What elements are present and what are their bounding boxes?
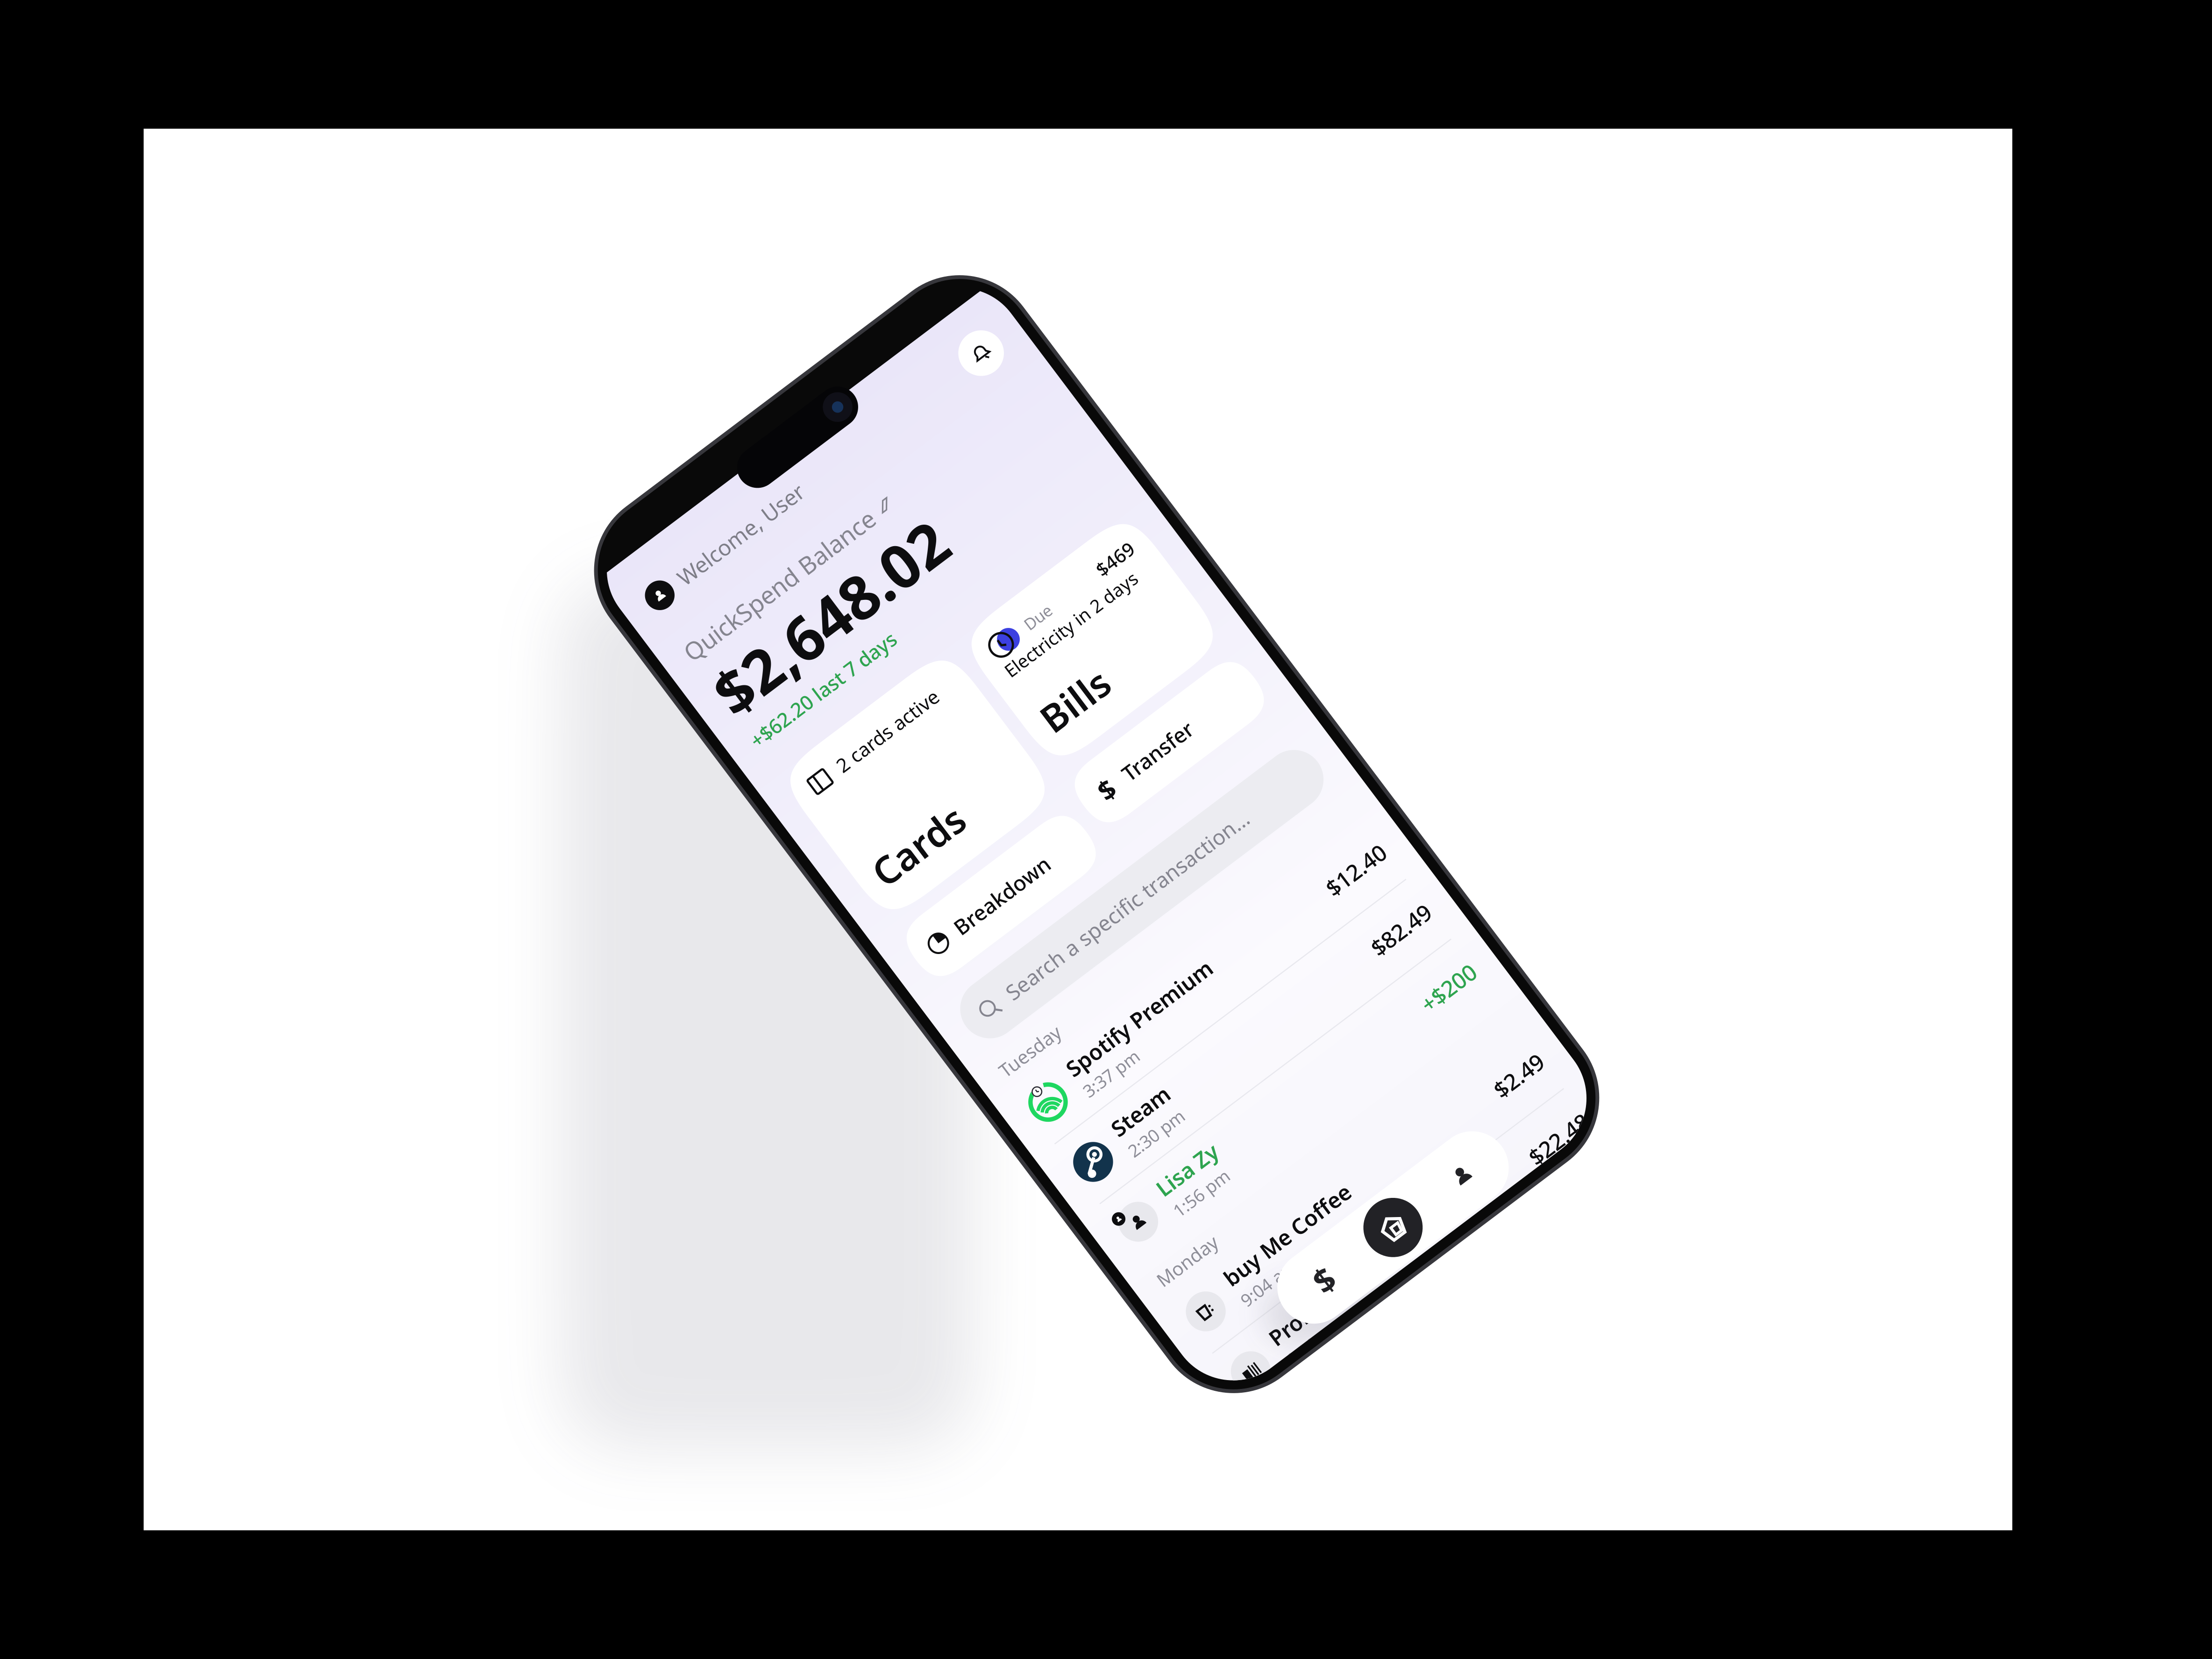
button[interactable]: Steam xyxy=(877,1057,1317,1131)
staticText: Lisa Zy xyxy=(931,1142,1003,1171)
staticText: buy Me Coffee xyxy=(931,1254,1084,1283)
button[interactable]: Spotify Premium xyxy=(877,982,1317,1056)
staticText: 6:56 pm xyxy=(931,1359,997,1383)
staticText: Breakdown xyxy=(927,812,1041,840)
staticText: Search a specific transaction… xyxy=(929,895,1228,923)
button[interactable]: Promenade Food xyxy=(877,1319,1317,1393)
staticText: Promenade Food xyxy=(931,1329,1112,1358)
staticText: 9:04 am xyxy=(931,1284,996,1308)
staticText: +$62.20 last 7 days xyxy=(877,541,1054,567)
staticText: Steam xyxy=(931,1067,999,1096)
staticText: Tuesday xyxy=(877,955,949,980)
staticText: 1:56 pm xyxy=(931,1172,997,1195)
staticText: 3:37 pm xyxy=(931,1022,997,1046)
staticText: QuickSpend Balance xyxy=(877,428,1109,461)
staticText: $2.49 xyxy=(1260,1266,1317,1296)
staticText: 2 cards active xyxy=(930,613,1053,639)
staticText: $2,648.02 xyxy=(877,461,1153,541)
button[interactable]: Home xyxy=(1053,1290,1140,1363)
staticText: Transfer xyxy=(1154,790,1237,818)
button[interactable]: Due xyxy=(1103,595,1317,758)
staticText: 2:30 pm xyxy=(931,1097,997,1120)
button[interactable]: buy Me Coffee xyxy=(877,1244,1317,1318)
button[interactable]: Profile xyxy=(1140,1290,1227,1363)
staticText: $469 xyxy=(1255,613,1298,638)
button[interactable]: $ xyxy=(1103,771,1317,837)
staticText: Welcome, User xyxy=(917,366,1069,395)
staticText: Cards xyxy=(895,711,1000,761)
staticText: $22.48 xyxy=(1248,1341,1317,1371)
staticText: $ xyxy=(1124,787,1139,822)
button[interactable]: Payments xyxy=(967,1290,1053,1363)
staticText: Bills xyxy=(1122,689,1198,739)
button[interactable]: 2 cards active xyxy=(877,595,1090,779)
staticText: Electricity in 2 days xyxy=(1122,639,1283,663)
button[interactable]: Welcome, User xyxy=(877,366,1069,395)
button[interactable]: Search a specific transaction… xyxy=(877,880,1317,939)
button[interactable]: Lisa Zy xyxy=(877,1132,1317,1206)
staticText: Spotify Premium xyxy=(931,992,1108,1021)
button[interactable]: Breakdown xyxy=(877,793,1090,859)
